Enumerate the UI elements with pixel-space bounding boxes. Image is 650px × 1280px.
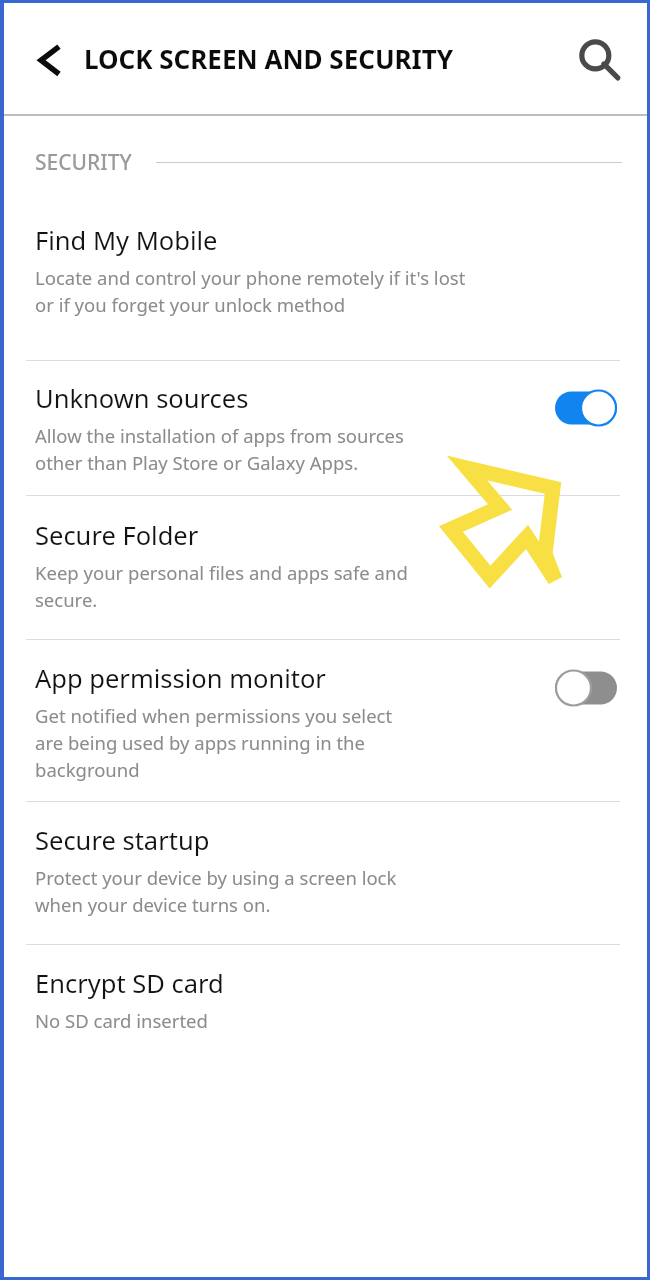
button[interactable]: Toggle on	[555, 389, 619, 427]
button[interactable]: Secure startup	[4, 823, 647, 918]
button[interactable]: Toggle off	[555, 669, 619, 707]
staticText: LOCK SCREEN AND SECURITY	[84, 41, 453, 76]
button[interactable]: Encrypt SD card	[4, 966, 647, 1033]
staticText: No SD card inserted	[35, 1008, 208, 1033]
staticText: Allow the installation of apps from sour…	[35, 423, 404, 476]
staticText: Protect your device by using a screen lo…	[35, 865, 397, 918]
staticText: Unknown sources	[35, 381, 249, 416]
staticText: SECURITY	[35, 148, 132, 177]
button[interactable]: App permission monitor	[4, 661, 647, 783]
button[interactable]: Find My Mobile	[4, 223, 647, 318]
staticText: App permission monitor	[35, 661, 326, 696]
staticText: Locate and control your phone remotely i…	[35, 265, 466, 318]
button[interactable]: Back	[22, 32, 78, 88]
staticText: Keep your personal files and apps safe a…	[35, 560, 408, 613]
button[interactable]: Unknown sources	[4, 381, 647, 476]
staticText: Find My Mobile	[35, 223, 218, 258]
staticText: Secure Folder	[35, 518, 199, 553]
button[interactable]: Search	[569, 30, 629, 90]
staticText: Secure startup	[35, 823, 210, 858]
staticText: Get notified when permissions you select…	[35, 703, 393, 783]
staticText: Encrypt SD card	[35, 966, 224, 1001]
button[interactable]: Secure Folder	[4, 518, 647, 613]
